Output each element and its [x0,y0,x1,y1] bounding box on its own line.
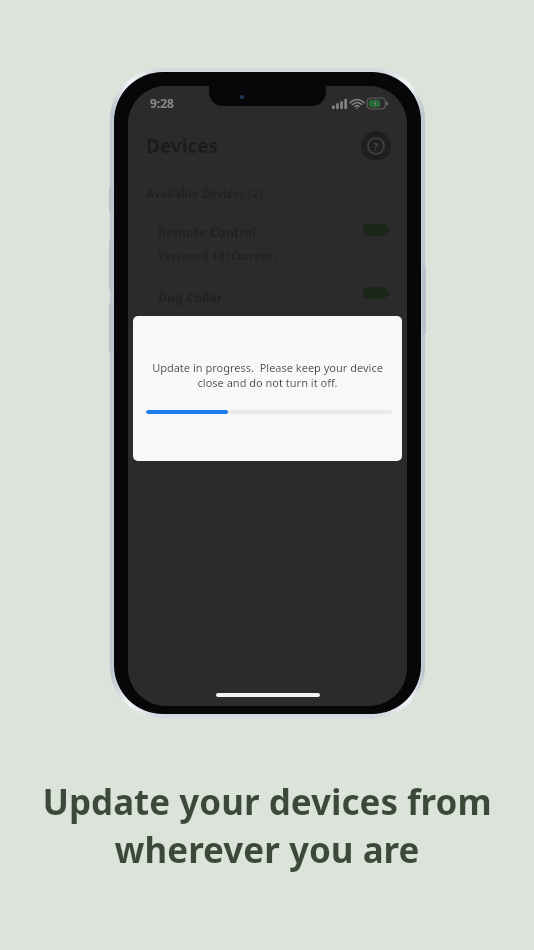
staticText: Update in progress. Please keep your dev… [152,360,383,390]
staticText: Devices [146,133,219,159]
staticText: Available Devices (2) [146,186,263,202]
button[interactable]: Dog Collar [128,275,407,319]
staticText: Remote Control [158,224,257,241]
staticText: Update your devices from wherever you ar… [42,778,492,873]
staticText: 9:28 [150,95,174,111]
button[interactable]: Help [361,131,391,161]
staticText: Version 0.14 (Current) [158,248,277,263]
staticText: ? [373,139,379,154]
staticText: Dog Collar [158,289,223,306]
